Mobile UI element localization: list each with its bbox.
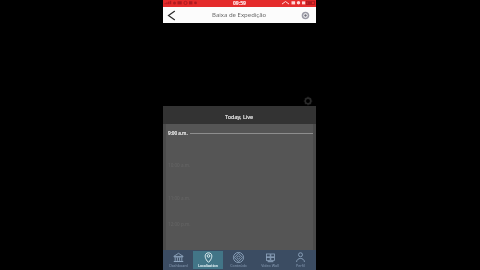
- staticText: Today, Live: [225, 113, 254, 120]
- button[interactable]: Perfil: [285, 251, 316, 269]
- staticText: Conteúdo: [230, 263, 247, 268]
- button[interactable]: Video Wall: [254, 251, 285, 269]
- staticText: Perfil: [296, 263, 305, 268]
- staticText: Dashboard: [169, 263, 188, 268]
- staticText: 9:00 a.m.: [168, 130, 188, 136]
- button[interactable]: Localization: [193, 251, 223, 269]
- staticText: 09:59: [233, 0, 246, 7]
- staticText: Baixa de Expedição: [212, 11, 267, 19]
- staticText: 11:00 a.m.: [168, 195, 191, 201]
- staticText: 12:00 p.m.: [168, 221, 191, 227]
- button[interactable]: Settings: [300, 10, 310, 20]
- staticText: 10:00 a.m.: [168, 162, 191, 168]
- button[interactable]: Dashboard: [163, 251, 193, 269]
- staticText: Video Wall: [261, 263, 279, 268]
- staticText: Localization: [198, 263, 218, 268]
- button[interactable]: Conteúdo: [223, 251, 254, 269]
- button[interactable]: Back: [165, 9, 178, 22]
